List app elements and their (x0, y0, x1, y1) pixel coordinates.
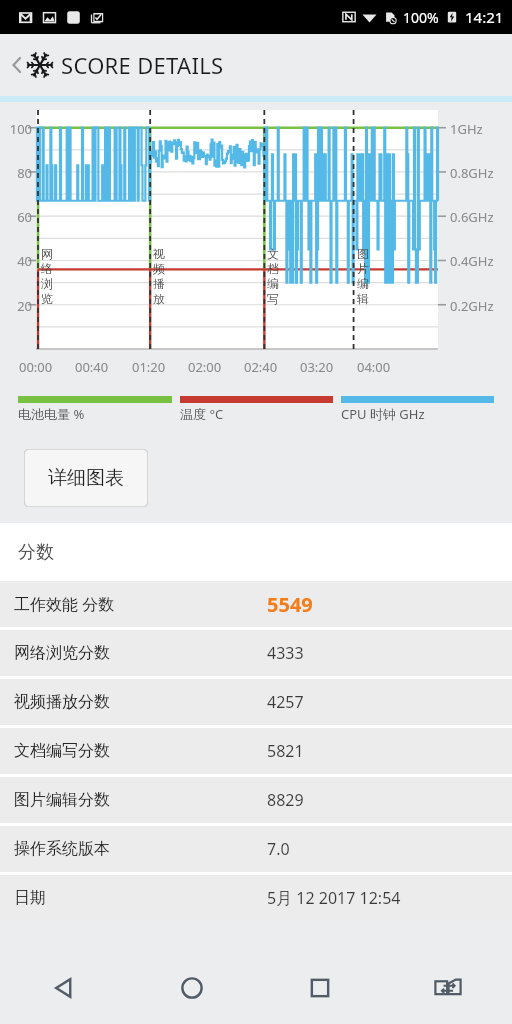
button[interactable]: 日期 (0, 875, 512, 921)
staticText: 0.8GHz (450, 164, 494, 182)
staticText: 8829 (267, 789, 304, 811)
staticText: 放 (153, 291, 165, 306)
staticText: 频 (153, 261, 165, 276)
staticText: 0.2GHz (450, 297, 494, 315)
button[interactable]: 网络浏览分数 (0, 630, 512, 676)
staticText: SCORE DETAILS (61, 50, 224, 80)
staticText: 编 (357, 276, 369, 291)
staticText: 01:20 (132, 358, 166, 376)
staticText: 工作效能 分数 (14, 593, 267, 615)
button[interactable]: Home (128, 952, 256, 1024)
staticText: 写 (267, 291, 279, 306)
staticText: 电池电量 % (18, 405, 85, 423)
button[interactable]: 操作系统版本 (0, 826, 512, 872)
staticText: 02:00 (188, 358, 222, 376)
staticText: 40 (4, 252, 32, 270)
staticText: 02:40 (244, 358, 278, 376)
button[interactable]: Back to scores (0, 44, 236, 86)
staticText: 60 (4, 208, 32, 226)
staticText: 视 (153, 246, 165, 261)
staticText: CPU 时钟 GHz (341, 405, 425, 423)
staticText: 文 (267, 246, 279, 261)
staticText: 辑 (357, 291, 369, 306)
button[interactable]: 详细图表 (24, 449, 148, 507)
staticText: 4333 (267, 642, 304, 664)
staticText: 详细图表 (48, 466, 124, 490)
staticText: 图 (357, 246, 369, 261)
button[interactable]: Back (0, 952, 128, 1024)
staticText: 5月 12 2017 12:54 (267, 887, 401, 909)
staticText: 文档编写分数 (14, 741, 267, 761)
staticText: 00:00 (19, 358, 53, 376)
staticText: 03:20 (300, 358, 334, 376)
staticText: 操作系统版本 (14, 839, 267, 859)
staticText: 00:40 (75, 358, 109, 376)
staticText: 览 (41, 291, 53, 306)
staticText: 1GHz (450, 120, 483, 138)
staticText: 0.4GHz (450, 252, 494, 270)
staticText: 100 (4, 120, 32, 138)
staticText: 100% (403, 8, 439, 27)
staticText: 80 (4, 164, 32, 182)
staticText: 20 (4, 297, 32, 315)
staticText: 图片编辑分数 (14, 790, 267, 810)
staticText: 日期 (14, 888, 267, 908)
button[interactable]: 文档编写分数 (0, 728, 512, 774)
staticText: 温度 °C (180, 405, 224, 423)
staticText: 编 (267, 276, 279, 291)
staticText: 0.6GHz (450, 208, 494, 226)
staticText: 片 (357, 261, 369, 276)
staticText: 网络浏览分数 (14, 643, 267, 663)
staticText: 络 (41, 261, 53, 276)
button[interactable]: 工作效能 分数 (0, 581, 512, 627)
button[interactable]: 图片编辑分数 (0, 777, 512, 823)
staticText: 7.0 (267, 838, 290, 860)
staticText: 播 (153, 276, 165, 291)
staticText: 分数 (18, 541, 54, 564)
staticText: 14:21 (465, 7, 504, 27)
staticText: 档 (267, 261, 279, 276)
staticText: 5821 (267, 740, 304, 762)
button[interactable]: Recents (256, 952, 384, 1024)
staticText: 5549 (267, 591, 313, 618)
button[interactable]: Switch app (384, 952, 512, 1024)
staticText: 视频播放分数 (14, 692, 267, 712)
staticText: 浏 (41, 276, 53, 291)
staticText: 04:00 (357, 358, 391, 376)
staticText: 网 (41, 246, 53, 261)
staticText: 4257 (267, 691, 304, 713)
button[interactable]: 视频播放分数 (0, 679, 512, 725)
